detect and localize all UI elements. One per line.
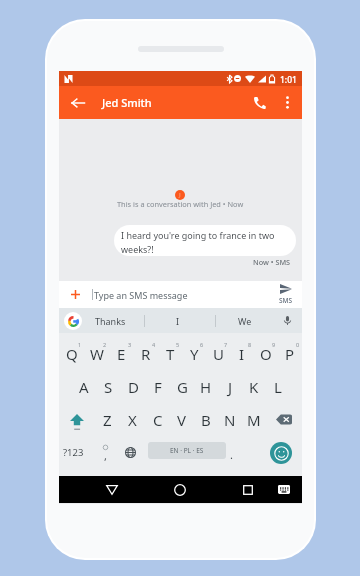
button[interactable]: Send SMS [271,281,301,308]
staticText: 0 [296,341,300,348]
button[interactable]: More options [273,86,301,119]
staticText: W [90,344,104,364]
button[interactable]: M [242,403,266,436]
staticText: V [177,410,187,430]
staticText: Thanks [95,315,126,327]
staticText: I [239,344,245,364]
staticText: I heard you're going to france in two we… [121,229,283,256]
staticText: I [176,315,180,327]
staticText: B [201,410,211,430]
button[interactable]: , [92,436,119,469]
staticText: ?123 [63,446,84,459]
button[interactable]: Thanks [77,308,144,333]
button[interactable]: B [194,403,218,436]
button[interactable]: K [242,370,266,403]
button[interactable]: X [120,403,145,436]
button[interactable]: E [109,337,134,370]
button[interactable]: H [194,370,218,403]
staticText: G [177,377,188,397]
button[interactable]: S [96,370,121,403]
staticText: 8 [248,341,252,348]
button[interactable]: Switch keyboard [271,476,296,503]
button[interactable]: F [146,370,170,403]
staticText: U [213,344,224,364]
button[interactable]: L [266,370,290,403]
button[interactable]: Back [97,476,126,503]
staticText: 5 [176,341,180,348]
button[interactable]: I [144,308,211,333]
button[interactable]: V [170,403,194,436]
button[interactable]: J [218,370,242,403]
staticText: X [128,410,137,430]
staticText: 4 [152,341,156,348]
staticText: , [104,448,107,463]
staticText: 3 [128,341,132,348]
staticText: O [260,344,272,364]
button[interactable]: R [134,337,158,370]
staticText: 7 [224,341,228,348]
button[interactable]: Google [64,312,82,330]
staticText: Z [103,410,112,430]
staticText: EN · PL · ES [170,446,204,455]
staticText: Type an SMS message [94,289,188,301]
button[interactable]: . [220,436,242,469]
button[interactable]: Navigate up [64,86,91,119]
button[interactable]: ?123 [59,436,88,469]
staticText: C [153,410,163,430]
staticText: T [166,344,175,364]
button[interactable]: T [158,337,182,370]
staticText: 9 [272,341,276,348]
staticText: F [154,377,162,397]
staticText: K [249,377,259,397]
staticText: R [141,344,151,364]
button[interactable]: Home [166,476,194,503]
staticText: 1 [78,341,82,348]
staticText: D [128,377,139,397]
button[interactable]: C [145,403,170,436]
button[interactable]: We [211,308,278,333]
button[interactable]: D [121,370,146,403]
staticText: A [79,377,89,397]
staticText: Y [190,344,199,364]
button[interactable]: I [230,337,254,370]
staticText: Now • SMS [253,257,291,267]
button[interactable]: Shift [59,403,95,436]
button[interactable]: Z [95,403,120,436]
button[interactable]: N [218,403,242,436]
button[interactable]: Backspace [266,403,302,436]
button[interactable]: P [278,337,302,370]
staticText: P [285,344,295,364]
staticText: We [238,315,252,327]
staticText: H [200,377,212,397]
staticText: J [179,191,181,199]
staticText: M [247,410,261,430]
button[interactable]: Voice input [276,308,298,333]
button[interactable]: W [84,337,109,370]
button[interactable]: Space [148,442,226,459]
staticText: E [117,344,126,364]
staticText: N [224,410,236,430]
staticText: Q [66,344,78,364]
button[interactable]: Emoji [270,436,292,469]
button[interactable]: O [254,337,278,370]
button[interactable]: Call [245,86,273,119]
staticText: Jed Smith [102,95,152,110]
staticText: S [104,377,113,397]
button[interactable]: Change language [117,436,143,469]
staticText: 6 [200,341,204,348]
button[interactable]: Q [59,337,84,370]
button[interactable]: I heard you're going to france in two we… [114,225,296,256]
button[interactable]: Add attachment [59,281,91,308]
staticText: L [274,377,282,397]
staticText: 1:01 [280,74,297,86]
staticText: SMS [279,296,293,305]
button[interactable]: Y [182,337,206,370]
staticText: 2 [103,341,107,348]
staticText: . [230,447,233,462]
staticText: J [228,377,233,397]
staticText: This is a conversation with Jed • Now [117,199,244,209]
button[interactable]: U [206,337,230,370]
button[interactable]: G [170,370,194,403]
button[interactable]: A [71,370,96,403]
button[interactable]: Recent apps [234,476,261,503]
